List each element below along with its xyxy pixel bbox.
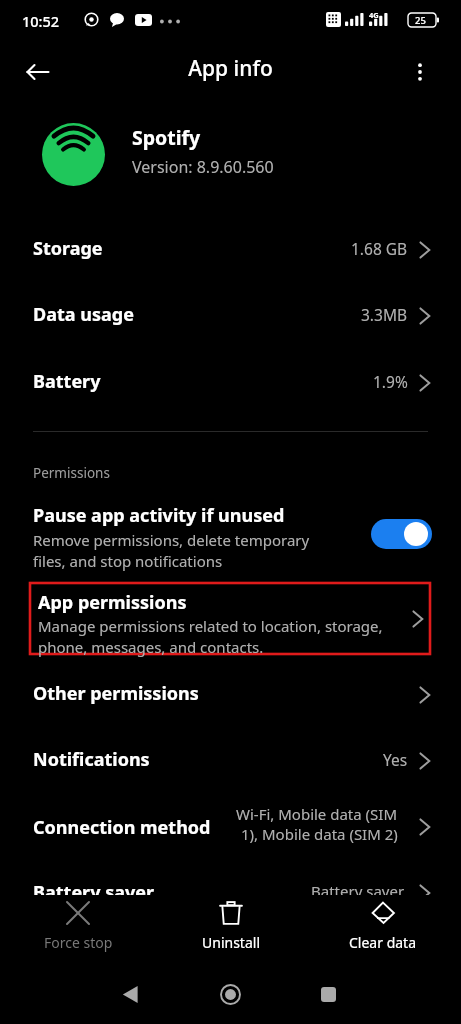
button[interactable]: Force stop — [3, 900, 153, 952]
button[interactable]: Data usage — [0, 292, 461, 342]
button[interactable]: Home — [208, 972, 252, 1016]
button[interactable]: Back — [108, 972, 152, 1016]
staticText: Pause app activity if unused — [33, 503, 285, 528]
button[interactable]: App permissions — [30, 583, 430, 654]
staticText: Notifications — [33, 747, 150, 772]
button[interactable]: Recent apps — [306, 972, 350, 1016]
staticText: App info — [188, 54, 273, 83]
staticText: Connection method — [33, 815, 211, 840]
staticText: files, and stop notifications — [33, 551, 223, 571]
staticText: Clear data — [349, 933, 417, 952]
staticText: Wi-Fi, Mobile data (SIM — [236, 804, 398, 824]
staticText: Battery saver — [33, 880, 155, 905]
button[interactable]: Battery saver — [0, 875, 461, 911]
staticText: 1.68 GB — [351, 238, 408, 259]
staticText: 1), Mobile data (SIM 2) — [241, 824, 398, 844]
staticText: Battery saver — [311, 881, 405, 901]
staticText: phone, messages, and contacts. — [38, 637, 264, 657]
staticText: 4G — [369, 10, 379, 20]
staticText: Storage — [33, 236, 103, 261]
button[interactable]: Uninstall — [156, 900, 306, 952]
button[interactable]: Pause app activity toggle — [371, 519, 432, 549]
staticText: 1.9% — [373, 371, 408, 392]
button[interactable]: Clear data — [308, 900, 458, 952]
staticText: 3.3MB — [361, 304, 408, 325]
button[interactable]: Storage — [0, 226, 461, 276]
button[interactable]: More options — [400, 52, 440, 92]
staticText: Permissions — [33, 464, 110, 482]
staticText: Force stop — [44, 933, 113, 952]
staticText: Manage permissions related to location, … — [38, 616, 383, 636]
staticText: App permissions — [38, 590, 187, 615]
staticText: Data usage — [33, 302, 134, 327]
staticText: 25 — [415, 14, 426, 27]
staticText: 10:52 — [22, 11, 60, 31]
button[interactable]: Notifications — [0, 737, 461, 787]
staticText: Spotify — [132, 124, 201, 151]
staticText: Remove permissions, delete temporary — [33, 530, 310, 550]
button[interactable]: Other permissions — [0, 671, 461, 721]
staticText: Yes — [383, 749, 408, 770]
button[interactable]: Back — [18, 52, 58, 92]
staticText: Battery — [33, 369, 101, 394]
button[interactable]: Connection method — [0, 795, 461, 859]
staticText: Uninstall — [202, 933, 260, 952]
button[interactable]: Battery — [0, 359, 461, 409]
staticText: Version: 8.9.60.560 — [132, 156, 274, 178]
staticText: Other permissions — [33, 681, 199, 706]
button[interactable]: Pause app activity if unused — [0, 495, 461, 577]
